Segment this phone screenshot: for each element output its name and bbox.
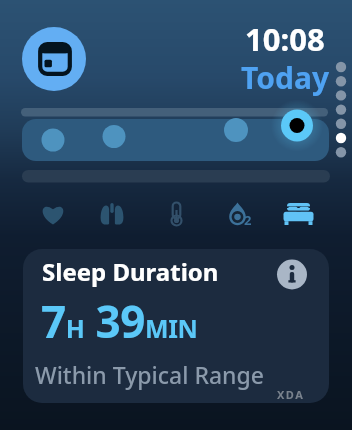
button[interactable] xyxy=(152,196,198,232)
button[interactable] xyxy=(30,196,76,232)
staticText: Sleep Duration xyxy=(42,255,219,288)
staticText: Today xyxy=(241,57,330,98)
button[interactable] xyxy=(213,196,259,232)
staticText: 2 xyxy=(244,211,252,229)
staticText: 7H 39MIN xyxy=(41,291,198,351)
staticText: Within Typical Range xyxy=(35,359,264,390)
button[interactable]: Sleep Duration xyxy=(23,249,329,403)
button[interactable] xyxy=(22,108,329,183)
button[interactable] xyxy=(91,196,137,232)
button[interactable] xyxy=(274,196,320,232)
staticText: XDA xyxy=(277,387,305,402)
staticText: 10:08 xyxy=(245,18,325,60)
button[interactable] xyxy=(22,27,86,91)
